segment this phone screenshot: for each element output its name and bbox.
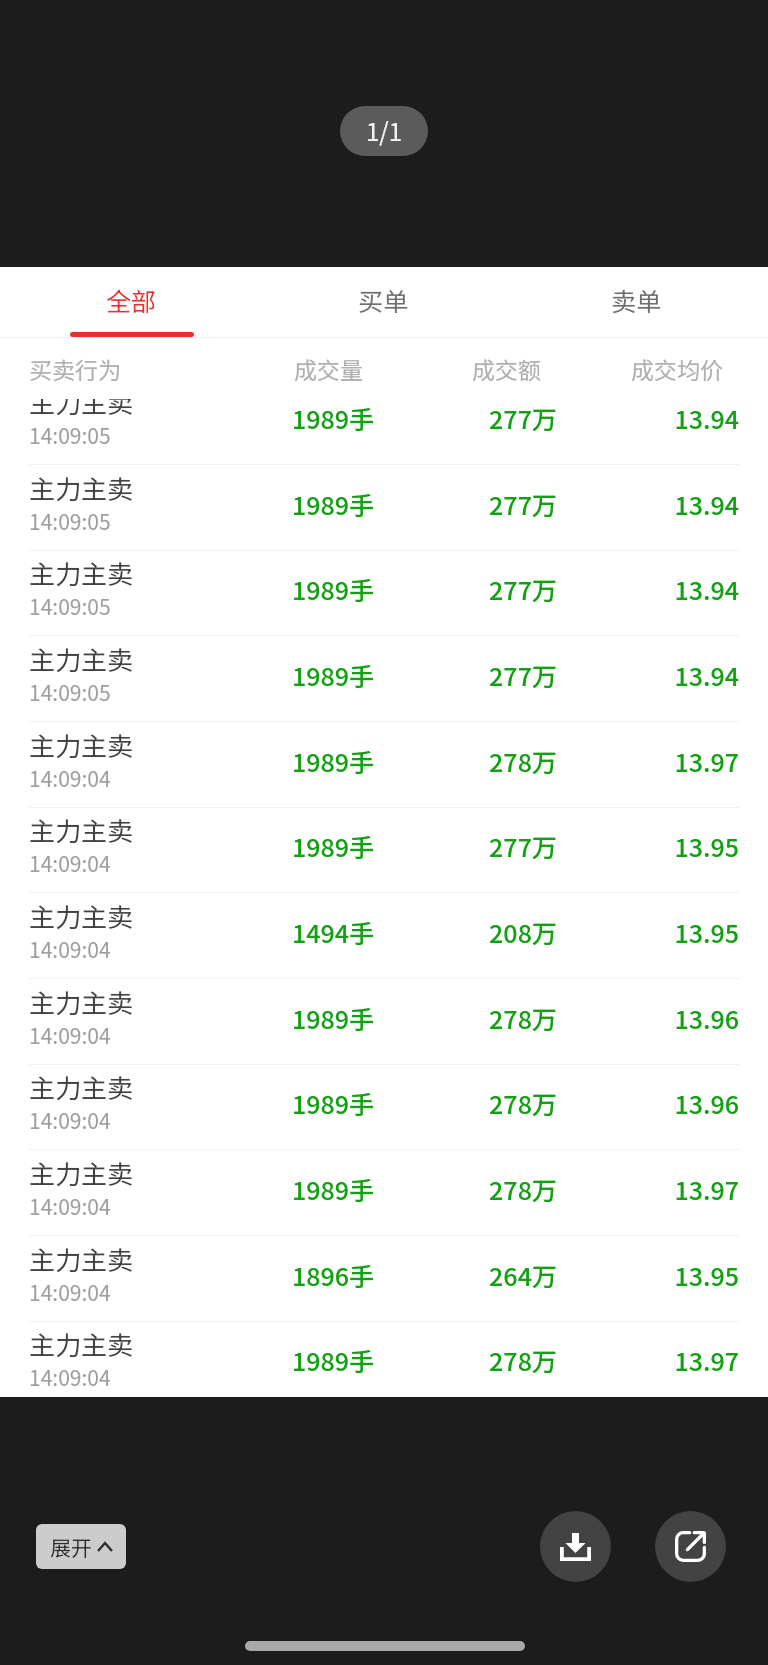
- staticText: 主力主卖: [29, 1154, 134, 1192]
- staticText: 主力主卖: [29, 897, 134, 935]
- staticText: 卖单: [611, 282, 662, 318]
- staticText: 14:09:04: [29, 1105, 111, 1135]
- staticText: 13.94: [655, 657, 739, 693]
- staticText: 14:09:05: [29, 420, 111, 450]
- staticText: 14:09:04: [29, 1020, 111, 1050]
- staticText: 264万: [391, 1257, 655, 1293]
- staticText: 1989手: [275, 486, 391, 522]
- button[interactable]: Download: [540, 1511, 611, 1582]
- button[interactable]: Open in new window: [655, 1511, 726, 1582]
- staticText: 13.95: [655, 914, 739, 950]
- staticText: 主力主卖: [29, 811, 134, 849]
- button[interactable]: 主力主卖: [0, 465, 768, 551]
- staticText: 1989手: [275, 1000, 391, 1036]
- staticText: 主力主卖: [29, 726, 134, 764]
- button[interactable]: 主力主卖: [0, 893, 768, 979]
- staticText: 1989手: [275, 743, 391, 779]
- staticText: 14:09:04: [29, 1277, 111, 1307]
- staticText: 14:09:04: [29, 1191, 111, 1221]
- staticText: 买卖行为: [29, 352, 275, 385]
- staticText: 278万: [391, 1000, 655, 1036]
- staticText: 13.97: [655, 743, 739, 779]
- button[interactable]: 卖单: [510, 267, 763, 337]
- staticText: 成交额: [382, 352, 631, 385]
- staticText: 主力主卖: [29, 983, 134, 1021]
- button[interactable]: 主力主卖: [0, 550, 768, 636]
- staticText: 13.94: [655, 486, 739, 522]
- staticText: 13.95: [655, 1257, 739, 1293]
- button[interactable]: 主力主卖: [0, 636, 768, 722]
- staticText: 14:09:05: [29, 677, 111, 707]
- staticText: 14:09:04: [29, 934, 111, 964]
- staticText: 1/1: [366, 113, 403, 148]
- staticText: 277万: [391, 828, 655, 864]
- staticText: 278万: [391, 1342, 655, 1378]
- staticText: 13.96: [655, 1085, 739, 1121]
- staticText: 1989手: [275, 657, 391, 693]
- staticText: 买单: [358, 282, 409, 318]
- staticText: 277万: [391, 657, 655, 693]
- button[interactable]: 买单: [257, 267, 510, 337]
- button[interactable]: 主力主卖: [0, 807, 768, 893]
- staticText: 14:09:04: [29, 1362, 111, 1392]
- staticText: 主力主卖: [29, 1325, 134, 1363]
- button[interactable]: 展开: [36, 1524, 126, 1569]
- staticText: 14:09:05: [29, 506, 111, 536]
- staticText: 1896手: [275, 1257, 391, 1293]
- staticText: 277万: [391, 486, 655, 522]
- staticText: 主力主卖: [29, 640, 134, 678]
- button[interactable]: 主力主卖: [0, 722, 768, 808]
- staticText: 14:09:04: [29, 848, 111, 878]
- staticText: 208万: [391, 914, 655, 950]
- button[interactable]: 主力主卖: [0, 399, 768, 465]
- button[interactable]: 全部: [5, 267, 257, 337]
- staticText: 13.97: [655, 1342, 739, 1378]
- staticText: 13.95: [655, 828, 739, 864]
- staticText: 13.94: [655, 400, 739, 436]
- staticText: 1989手: [275, 1171, 391, 1207]
- button[interactable]: 主力主卖: [0, 1150, 768, 1236]
- staticText: 主力主卖: [29, 469, 134, 507]
- staticText: 1494手: [275, 914, 391, 950]
- staticText: 13.96: [655, 1000, 739, 1036]
- staticText: 278万: [391, 743, 655, 779]
- staticText: 主力主卖: [29, 399, 134, 421]
- staticText: 1989手: [275, 571, 391, 607]
- staticText: 14:09:05: [29, 591, 111, 621]
- staticText: 1989手: [275, 828, 391, 864]
- staticText: 278万: [391, 1085, 655, 1121]
- staticText: 主力主卖: [29, 1240, 134, 1278]
- staticText: 277万: [391, 571, 655, 607]
- staticText: 13.94: [655, 571, 739, 607]
- staticText: 13.97: [655, 1171, 739, 1207]
- staticText: 277万: [391, 400, 655, 436]
- staticText: 成交均价: [631, 352, 722, 385]
- button[interactable]: 主力主卖: [0, 1321, 768, 1397]
- staticText: 278万: [391, 1171, 655, 1207]
- button[interactable]: 主力主卖: [0, 1236, 768, 1322]
- staticText: 14:09:04: [29, 763, 111, 793]
- staticText: 主力主卖: [29, 1068, 134, 1106]
- button[interactable]: 1/1: [340, 106, 428, 156]
- staticText: 成交量: [275, 352, 382, 385]
- staticText: 全部: [106, 282, 157, 318]
- button[interactable]: 主力主卖: [0, 979, 768, 1065]
- staticText: 1989手: [275, 1085, 391, 1121]
- staticText: 展开: [50, 1532, 92, 1562]
- button[interactable]: 主力主卖: [0, 1064, 768, 1150]
- staticText: 1989手: [275, 1342, 391, 1378]
- staticText: 主力主卖: [29, 554, 134, 592]
- staticText: 1989手: [275, 400, 391, 436]
